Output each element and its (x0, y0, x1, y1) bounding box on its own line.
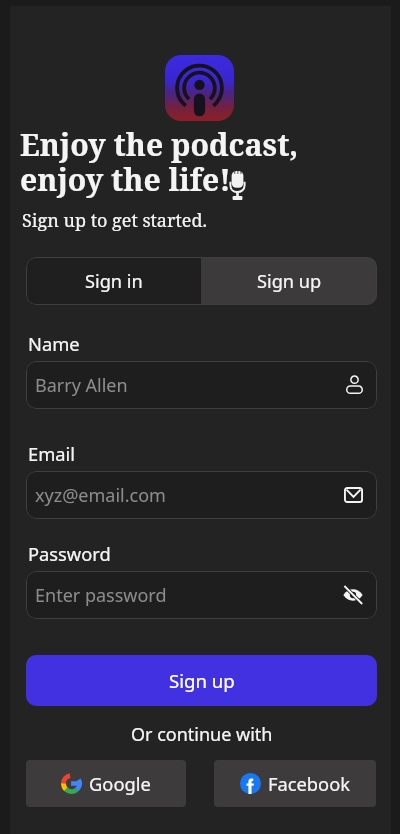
staticText: Enjoy the podcast, enjoy the life! (20, 124, 299, 200)
button[interactable]: Sign in (26, 257, 201, 305)
staticText: Password (28, 541, 111, 566)
staticText: Sign up to get started. (22, 208, 208, 233)
staticText: Name (28, 331, 80, 356)
staticText: Sign up (257, 269, 322, 294)
button[interactable]: Sign up (201, 257, 377, 305)
staticText: Sign up (169, 668, 235, 693)
staticText: Barry Allen (35, 373, 346, 398)
staticText: xyz@email.com (35, 483, 344, 508)
staticText: Google (89, 771, 151, 796)
staticText: Enter password (35, 583, 343, 608)
button[interactable]: Sign up (26, 655, 377, 706)
staticText: Sign in (85, 269, 143, 294)
button[interactable]: Google (26, 760, 186, 807)
staticText: Or continue with (131, 722, 273, 747)
other: Email (344, 487, 363, 503)
button[interactable]: Enter password (26, 571, 377, 619)
button[interactable]: Facebook (214, 760, 376, 807)
staticText: Email (28, 441, 75, 466)
other: Name (346, 376, 363, 394)
button[interactable]: Barry Allen (26, 361, 377, 409)
button[interactable]: xyz@email.com (26, 471, 377, 519)
other: Show password (343, 586, 363, 604)
staticText: Facebook (268, 771, 351, 796)
